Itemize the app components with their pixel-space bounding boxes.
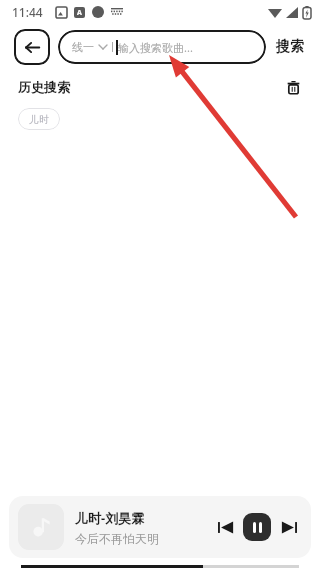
staticText: 11:44 (12, 4, 43, 20)
button[interactable]: Next (276, 514, 302, 540)
staticText: 输入搜索歌曲... (118, 40, 193, 55)
staticText: 儿时-刘昊霖 (75, 509, 145, 527)
button[interactable]: 儿时 (18, 108, 60, 130)
staticText: 搜索 (276, 38, 304, 56)
staticText: A (77, 8, 82, 18)
staticText: 线一 (72, 40, 94, 54)
button[interactable]: 搜索 (274, 32, 306, 62)
button[interactable]: Previous (212, 514, 238, 540)
button[interactable]: Clear history (282, 76, 304, 98)
button[interactable]: Back (14, 29, 50, 65)
button[interactable]: Pause (243, 513, 271, 541)
staticText: 儿时 (29, 113, 49, 126)
button[interactable]: 线一 (58, 30, 266, 64)
staticText: 今后不再怕天明 (75, 531, 159, 546)
staticText: 历史搜索 (18, 79, 70, 95)
button[interactable]: 儿时-刘昊霖 (9, 496, 311, 558)
